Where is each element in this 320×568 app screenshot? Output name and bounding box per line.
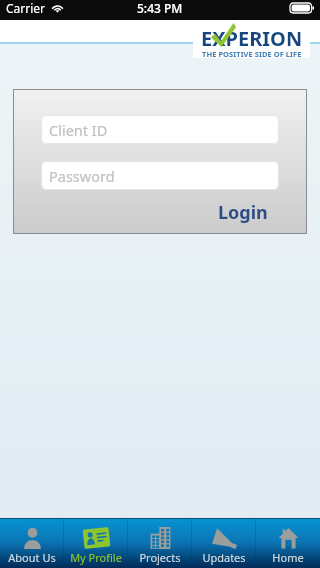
button[interactable]: My Profile: [64, 519, 128, 568]
staticText: Client ID: [49, 120, 108, 140]
button[interactable]: Login: [208, 198, 268, 227]
staticText: About Us: [8, 550, 56, 565]
staticText: Home: [272, 550, 304, 565]
staticText: Carrier: [6, 0, 46, 16]
staticText: THE POSITIVE SIDE OF LIFE: [202, 49, 302, 59]
button[interactable]: About Us: [0, 519, 64, 568]
staticText: Projects: [139, 550, 181, 565]
staticText: My Profile: [70, 550, 122, 565]
staticText: EXPERION: [201, 25, 303, 52]
staticText: Login: [218, 200, 268, 225]
button[interactable]: Projects: [128, 519, 192, 568]
staticText: Password: [49, 166, 115, 186]
staticText: Updates: [202, 550, 246, 565]
button[interactable]: Updates: [192, 519, 256, 568]
button[interactable]: Password: [41, 161, 279, 190]
button[interactable]: Client ID: [41, 115, 279, 144]
staticText: 5:43 PM: [137, 0, 183, 16]
button[interactable]: Home: [256, 519, 320, 568]
